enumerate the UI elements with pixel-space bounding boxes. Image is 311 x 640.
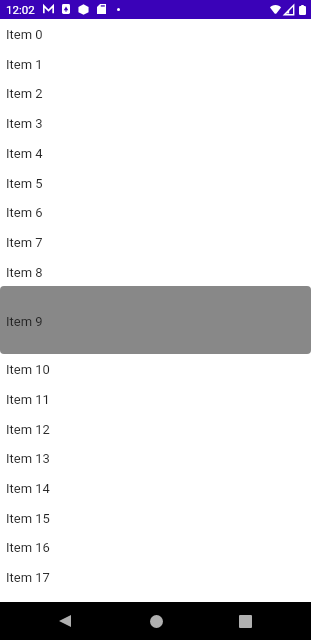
button[interactable]: Item 5 bbox=[0, 168, 311, 198]
staticText: Item 13 bbox=[6, 451, 50, 466]
staticText: Item 8 bbox=[6, 265, 43, 280]
button[interactable]: Item 16 bbox=[0, 532, 311, 562]
button[interactable]: Item 9 bbox=[0, 286, 311, 354]
button[interactable]: Item 13 bbox=[0, 443, 311, 473]
staticText: 12:02 bbox=[6, 3, 35, 16]
staticText: Item 3 bbox=[6, 116, 43, 131]
staticText: Item 0 bbox=[6, 27, 43, 42]
button[interactable]: Item 15 bbox=[0, 503, 311, 533]
button[interactable]: Item 0 bbox=[0, 19, 311, 49]
staticText: Item 5 bbox=[6, 176, 43, 191]
button[interactable]: Back bbox=[46, 602, 84, 640]
staticText: Item 4 bbox=[6, 146, 43, 161]
staticText: Item 2 bbox=[6, 86, 43, 101]
staticText: Item 9 bbox=[6, 314, 43, 329]
staticText: Item 16 bbox=[6, 540, 50, 555]
button[interactable]: Item 8 bbox=[0, 257, 311, 287]
button[interactable]: Item 10 bbox=[0, 354, 311, 384]
staticText: Item 11 bbox=[6, 392, 50, 407]
staticText: Item 1 bbox=[6, 57, 43, 72]
staticText: Item 7 bbox=[6, 235, 43, 250]
staticText: Item 6 bbox=[6, 205, 43, 220]
button[interactable]: Recents bbox=[226, 602, 264, 640]
button[interactable]: Item 6 bbox=[0, 197, 311, 227]
button[interactable]: Item 2 bbox=[0, 78, 311, 108]
button[interactable]: Item 7 bbox=[0, 227, 311, 257]
button[interactable]: Item 1 bbox=[0, 49, 311, 79]
staticText: Item 10 bbox=[6, 362, 50, 377]
button[interactable]: Item 12 bbox=[0, 414, 311, 444]
button[interactable]: Home bbox=[137, 602, 175, 640]
staticText: Item 12 bbox=[6, 422, 50, 437]
staticText: Item 17 bbox=[6, 570, 50, 585]
button[interactable]: Item 11 bbox=[0, 384, 311, 414]
button[interactable]: Item 3 bbox=[0, 108, 311, 138]
button[interactable]: Item 4 bbox=[0, 138, 311, 168]
button[interactable]: Item 14 bbox=[0, 473, 311, 503]
staticText: Item 15 bbox=[6, 511, 50, 526]
staticText: Item 14 bbox=[6, 481, 50, 496]
button[interactable]: Item 17 bbox=[0, 562, 311, 592]
